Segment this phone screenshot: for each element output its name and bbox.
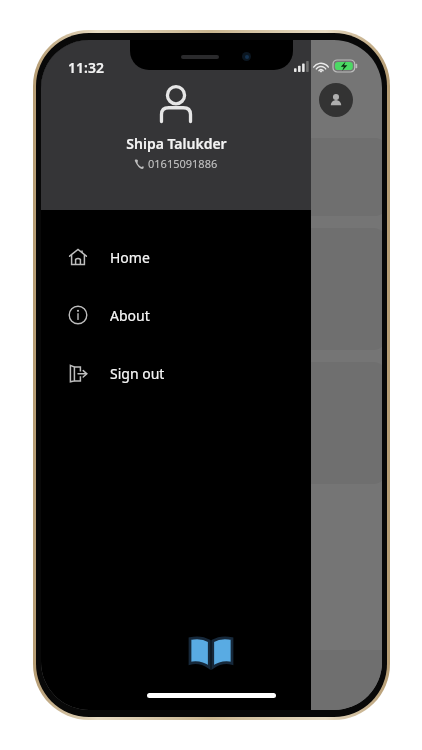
staticText: 01615091886 bbox=[148, 156, 218, 171]
button[interactable]: About bbox=[41, 298, 311, 332]
staticText: 11:32 bbox=[68, 58, 104, 77]
button[interactable]: Profile bbox=[319, 83, 353, 117]
button[interactable]: Home bbox=[41, 240, 311, 274]
staticText: Home bbox=[110, 248, 150, 267]
button[interactable]: Sign out bbox=[41, 356, 311, 390]
staticText: Shipa Talukder bbox=[126, 134, 227, 153]
staticText: About bbox=[110, 306, 150, 325]
staticText: Sign out bbox=[110, 364, 165, 383]
